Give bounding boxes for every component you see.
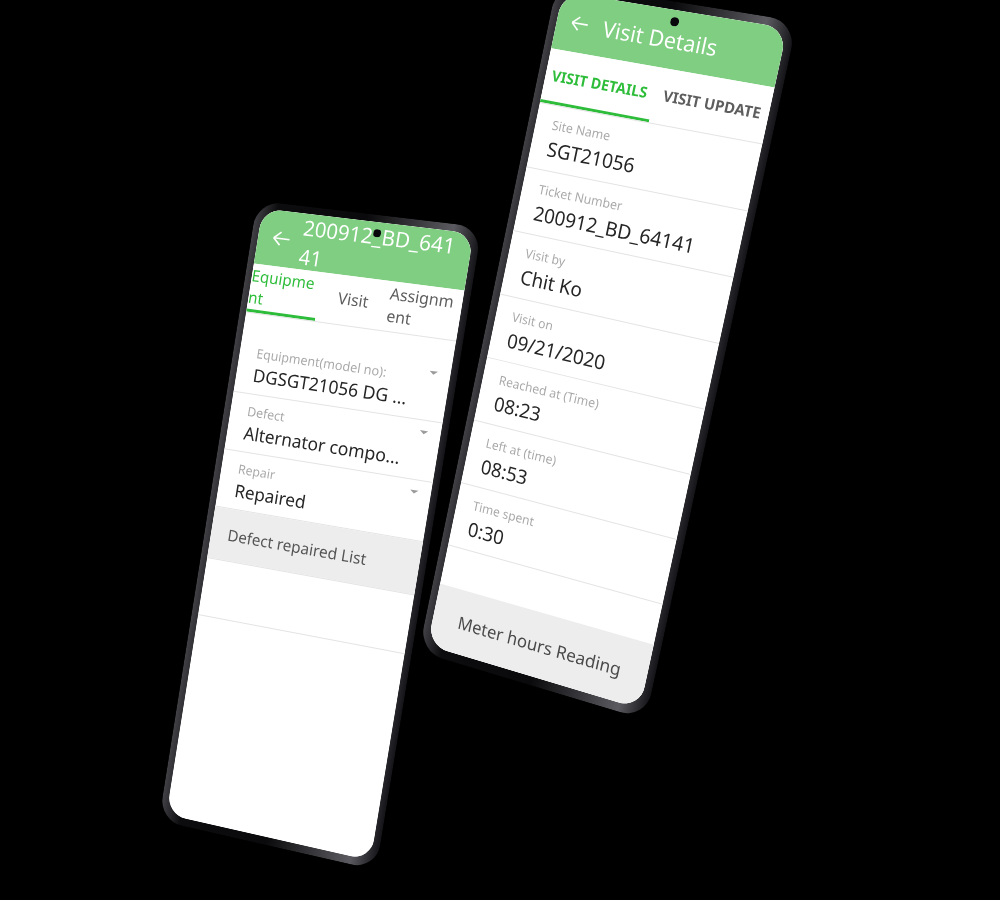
staticText: Assignment bbox=[385, 282, 464, 336]
staticText: Visit Details bbox=[600, 13, 721, 62]
staticText: 08:23 bbox=[492, 390, 544, 428]
staticText: Alternator components failure ... bbox=[242, 421, 408, 471]
staticText: 08:53 bbox=[479, 453, 531, 491]
staticText: Defect repaired List bbox=[226, 524, 369, 570]
button[interactable]: VISIT UPDATE bbox=[649, 68, 775, 141]
button[interactable]: Site Name bbox=[527, 103, 762, 210]
staticText: Equipment(model no): bbox=[255, 344, 389, 381]
button[interactable]: Repair bbox=[215, 449, 433, 541]
button[interactable]: Meter hours Reading bbox=[427, 584, 654, 709]
staticText: Repaired bbox=[233, 478, 308, 515]
button[interactable]: Visit on bbox=[487, 294, 719, 409]
staticText: 200912_BD_64141 bbox=[531, 200, 698, 260]
staticText: 0:30 bbox=[466, 516, 507, 551]
staticText: VISIT UPDATE bbox=[661, 85, 763, 123]
button[interactable]: Back bbox=[269, 227, 294, 251]
button[interactable]: Time spent bbox=[448, 483, 677, 604]
staticText: Reached at (Time) bbox=[497, 371, 601, 413]
staticText: Left at (time) bbox=[484, 434, 558, 469]
button[interactable]: Left at (time) bbox=[461, 420, 691, 539]
staticText: DGSGT21056 DG EPM140-M2B bbox=[251, 363, 418, 412]
button[interactable]: Equipment(model no): bbox=[234, 334, 452, 422]
button[interactable]: Visit by bbox=[500, 231, 733, 343]
button[interactable]: VISIT DETAILS bbox=[540, 48, 660, 119]
staticText: VISIT DETAILS bbox=[550, 65, 650, 102]
staticText: Visit by bbox=[524, 244, 568, 270]
button[interactable]: Defect bbox=[224, 392, 442, 482]
button[interactable]: Reached at (Time) bbox=[474, 358, 705, 474]
button[interactable]: Assignment bbox=[385, 281, 464, 337]
staticText: Site Name bbox=[550, 116, 613, 145]
staticText: Time spent bbox=[471, 497, 536, 530]
staticText: Meter hours Reading bbox=[456, 610, 624, 682]
staticText: Visit bbox=[336, 287, 371, 313]
button[interactable]: Visit bbox=[314, 272, 392, 327]
button[interactable]: Equipment bbox=[247, 263, 322, 318]
staticText: 09/21/2020 bbox=[505, 327, 608, 376]
button[interactable]: Back bbox=[568, 11, 592, 36]
staticText: SGT21056 bbox=[545, 135, 638, 179]
staticText: Repair bbox=[237, 460, 277, 483]
button[interactable]: Defect repaired List bbox=[207, 507, 423, 594]
button[interactable]: Ticket Number bbox=[513, 167, 748, 277]
staticText: Equipment bbox=[247, 264, 322, 317]
staticText: 200912_BD_64141 bbox=[297, 213, 460, 289]
staticText: Visit on bbox=[511, 308, 555, 334]
staticText: Chit Ko bbox=[518, 263, 586, 303]
staticText: Ticket Number bbox=[537, 180, 624, 215]
staticText: Defect bbox=[246, 402, 286, 426]
